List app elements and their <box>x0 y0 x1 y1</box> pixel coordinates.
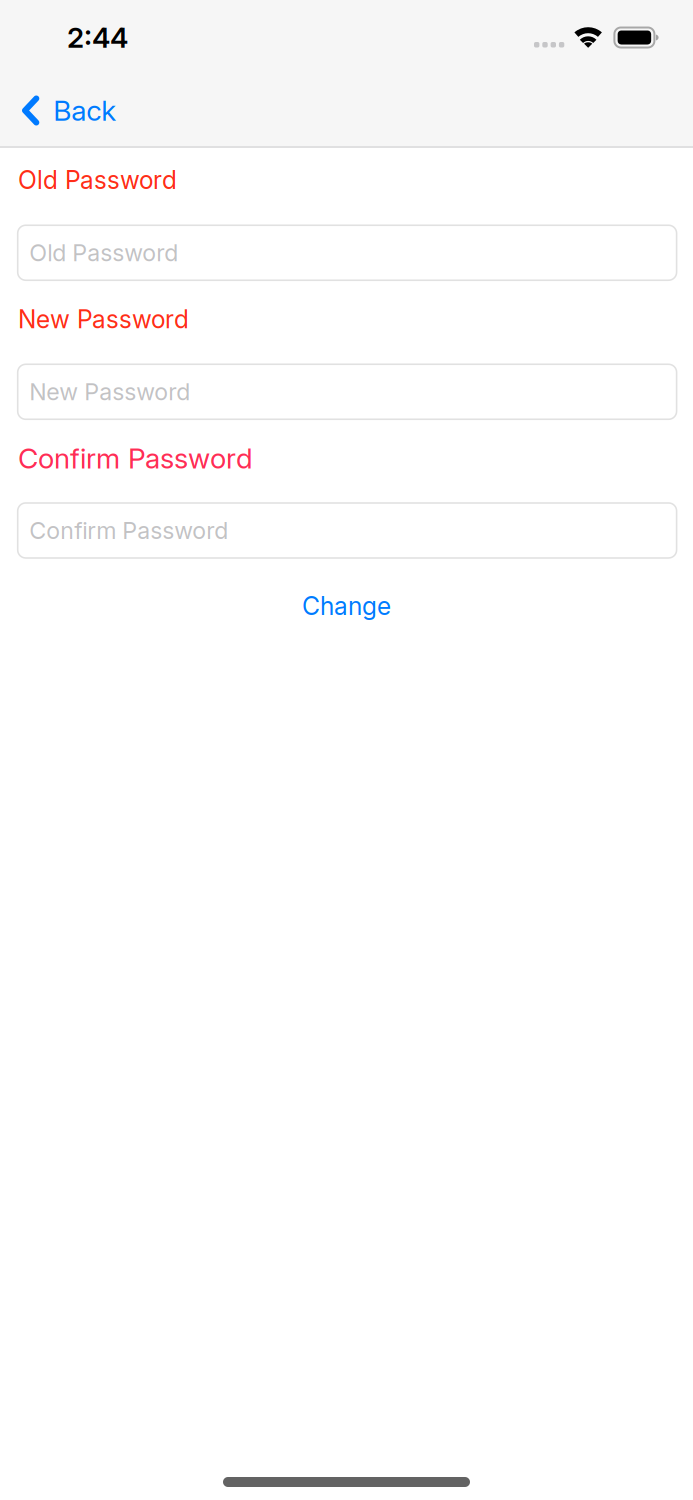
staticText: New Password <box>18 304 189 334</box>
staticText: Confirm Password <box>18 441 253 475</box>
button[interactable]: Change <box>0 592 693 620</box>
staticText: 2:44 <box>67 21 128 54</box>
staticText: Old Password <box>18 165 177 195</box>
staticText: Old Password <box>29 239 178 267</box>
staticText: New Password <box>29 378 190 406</box>
staticText: Back <box>53 94 116 127</box>
staticText: Change <box>302 591 391 621</box>
staticText: Confirm Password <box>29 516 228 545</box>
button[interactable]: Back <box>0 74 130 146</box>
